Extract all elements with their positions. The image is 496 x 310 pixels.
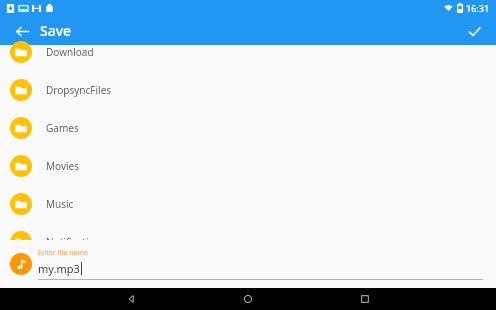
button[interactable]: Enter file name: [38, 248, 483, 280]
button[interactable]: Back: [8, 17, 36, 45]
button[interactable]: Music: [0, 185, 496, 223]
button[interactable]: Recent apps: [354, 288, 376, 310]
button[interactable]: Games: [0, 109, 496, 147]
staticText: 16:31: [466, 2, 490, 14]
button[interactable]: Confirm save: [460, 17, 488, 45]
staticText: Notifications: [46, 235, 106, 249]
button[interactable]: Home: [237, 288, 259, 310]
button[interactable]: Notifications: [0, 223, 496, 261]
staticText: Games: [46, 121, 79, 135]
button[interactable]: Movies: [0, 147, 496, 185]
staticText: Enter file name: [38, 248, 88, 258]
button[interactable]: DropsyncFiles: [0, 71, 496, 109]
button[interactable]: Back: [120, 288, 142, 310]
staticText: DropsyncFiles: [46, 83, 112, 97]
other: Audio file: [10, 253, 32, 275]
staticText: Save: [40, 21, 72, 40]
staticText: my.mp3: [38, 261, 80, 276]
staticText: Download: [46, 45, 94, 59]
staticText: Movies: [46, 159, 80, 173]
staticText: Music: [46, 197, 74, 211]
button[interactable]: Download: [0, 33, 496, 71]
